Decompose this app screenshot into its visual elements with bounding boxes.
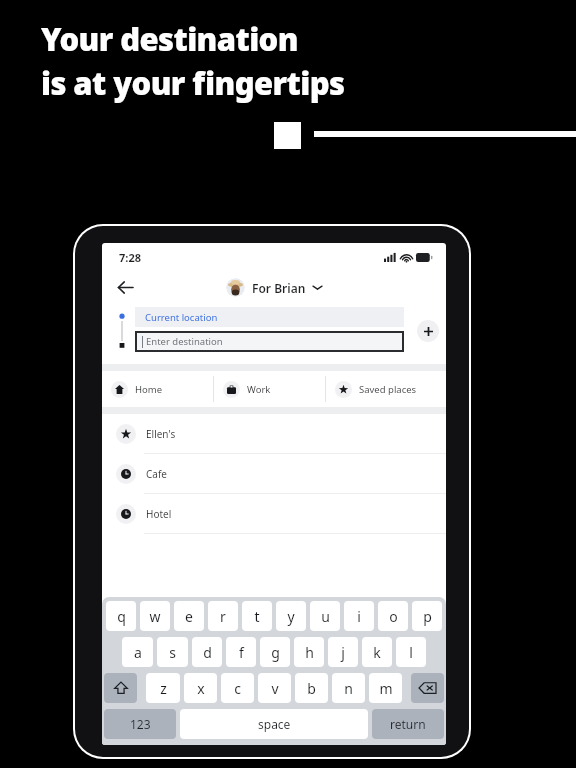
- staticText: Saved places: [359, 383, 417, 396]
- staticText: m: [379, 679, 393, 698]
- staticText: Hotel: [146, 507, 172, 521]
- button[interactable]: p: [412, 601, 442, 631]
- staticText: h: [305, 643, 314, 662]
- button[interactable]: w: [140, 601, 170, 631]
- staticText: Current location: [145, 311, 218, 324]
- button[interactable]: 123: [104, 709, 176, 739]
- button[interactable]: c: [221, 673, 254, 703]
- staticText: b: [307, 679, 316, 698]
- button[interactable]: Saved places: [326, 371, 446, 407]
- staticText: is at your fingertips: [41, 62, 345, 104]
- button[interactable]: l: [396, 637, 426, 667]
- staticText: a: [134, 643, 142, 662]
- button[interactable]: Ellen's: [102, 414, 446, 453]
- staticText: Work: [247, 383, 271, 396]
- staticText: r: [220, 607, 226, 626]
- button[interactable]: space: [180, 709, 368, 739]
- staticText: o: [389, 607, 398, 626]
- button[interactable]: r: [208, 601, 238, 631]
- button[interactable]: v: [258, 673, 291, 703]
- button[interactable]: x: [184, 673, 217, 703]
- button[interactable]: o: [378, 601, 408, 631]
- staticText: e: [185, 607, 193, 626]
- staticText: p: [423, 607, 432, 626]
- staticText: space: [258, 716, 291, 732]
- staticText: w: [149, 607, 161, 626]
- staticText: Cafe: [146, 467, 168, 481]
- staticText: t: [254, 607, 260, 626]
- staticText: d: [203, 643, 212, 662]
- button[interactable]: k: [362, 637, 392, 667]
- staticText: s: [169, 643, 176, 662]
- staticText: v: [271, 679, 279, 698]
- staticText: j: [341, 643, 345, 662]
- staticText: return: [390, 716, 426, 732]
- staticText: Enter destination: [146, 335, 223, 348]
- staticText: y: [287, 607, 295, 626]
- staticText: u: [321, 607, 330, 626]
- staticText: 7:28: [119, 250, 141, 265]
- button[interactable]: Work: [214, 371, 325, 407]
- button[interactable]: For Brian: [222, 276, 326, 299]
- button[interactable]: Add stop: [417, 320, 439, 342]
- button[interactable]: Enter destination: [135, 331, 404, 352]
- staticText: c: [234, 679, 241, 698]
- staticText: z: [160, 679, 167, 698]
- button[interactable]: y: [276, 601, 306, 631]
- button[interactable]: return: [372, 709, 444, 739]
- button[interactable]: e: [174, 601, 204, 631]
- button[interactable]: Back: [108, 271, 142, 303]
- staticText: l: [409, 643, 413, 662]
- staticText: f: [239, 643, 244, 662]
- staticText: For Brian: [252, 280, 306, 296]
- staticText: Ellen's: [146, 427, 176, 441]
- staticText: k: [373, 643, 381, 662]
- button[interactable]: u: [310, 601, 340, 631]
- button[interactable]: t: [242, 601, 272, 631]
- staticText: Your destination: [41, 18, 298, 60]
- staticText: q: [117, 607, 126, 626]
- button[interactable]: Hotel: [102, 494, 446, 533]
- button[interactable]: z: [146, 673, 180, 703]
- button[interactable]: Backspace: [411, 673, 444, 703]
- staticText: Home: [135, 383, 163, 396]
- staticText: g: [271, 643, 280, 662]
- staticText: n: [344, 679, 353, 698]
- button[interactable]: h: [294, 637, 324, 667]
- button[interactable]: Home: [102, 371, 213, 407]
- button[interactable]: n: [332, 673, 365, 703]
- button[interactable]: d: [192, 637, 222, 667]
- button[interactable]: Current location: [135, 307, 404, 327]
- button[interactable]: Cafe: [102, 454, 446, 493]
- staticText: 123: [130, 716, 151, 732]
- button[interactable]: q: [106, 601, 136, 631]
- button[interactable]: s: [157, 637, 188, 667]
- button[interactable]: Shift: [104, 673, 137, 703]
- button[interactable]: i: [344, 601, 374, 631]
- staticText: x: [197, 679, 205, 698]
- staticText: i: [357, 607, 361, 626]
- button[interactable]: b: [295, 673, 328, 703]
- button[interactable]: m: [369, 673, 402, 703]
- button[interactable]: j: [328, 637, 358, 667]
- button[interactable]: a: [122, 637, 153, 667]
- button[interactable]: g: [260, 637, 290, 667]
- button[interactable]: f: [226, 637, 256, 667]
